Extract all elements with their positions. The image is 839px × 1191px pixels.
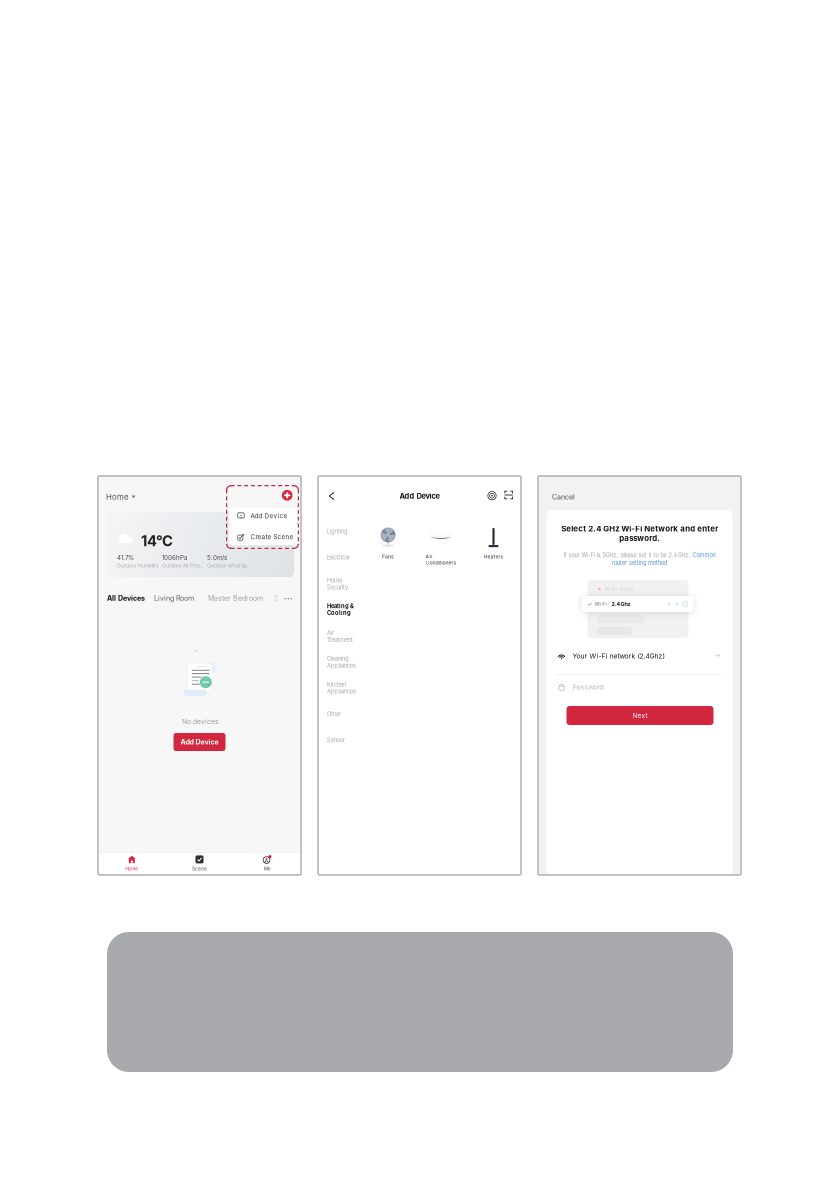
staticText: Air Conditioners [425,553,456,566]
staticText: S [274,594,279,602]
staticText: Cleaning Appliances [327,655,356,669]
button[interactable]: Me [233,852,301,875]
staticText: 14°C [141,532,173,550]
staticText: Outdoor Air Pres.. [162,563,203,569]
staticText: Kitchen Appliances [327,681,356,695]
button[interactable]: Scan QR code [503,489,515,501]
staticText: Wi-Fi - 5Ghz [604,586,633,592]
staticText: Heaters [483,553,503,560]
staticText: Next [632,711,647,719]
staticText: Master Bedroom [208,594,263,602]
staticText: Electrical [327,554,349,561]
staticText: Other [327,711,341,717]
button[interactable]: Scene [166,852,233,875]
staticText: Add Device [180,738,218,746]
staticText: Scene [192,866,207,871]
button[interactable]: Add Device [229,505,300,526]
button[interactable]: Home [98,852,166,875]
staticText: Add Device [250,512,287,520]
button[interactable]: Master Bedroom [208,594,263,602]
button[interactable]: Fans [365,527,411,567]
staticText: 2.4Ghz [611,601,630,607]
staticText: 5.0m/s [207,554,227,561]
button[interactable]: Air Conditioners [418,527,464,567]
button[interactable]: Cancel [552,490,592,504]
button[interactable]: Other [327,711,363,727]
button[interactable]: S [274,594,279,602]
staticText: ✕ [597,586,601,592]
staticText: Create Scene [250,533,293,541]
button[interactable]: Back [325,489,339,503]
button[interactable]: Heaters [470,527,516,567]
staticText: Your Wi-Fi network (2.4Ghz) [572,652,664,660]
button[interactable]: Voice control [486,490,498,502]
button[interactable]: Kitchen Appliances [327,681,363,697]
button[interactable]: Heating & Cooling [327,603,363,619]
button[interactable]: More rooms [284,595,293,601]
staticText: Lighting [327,528,348,535]
staticText: Cancel [552,493,575,501]
button[interactable]: Change network [712,651,722,661]
staticText: 41.7% [117,554,134,561]
staticText: Common [690,552,715,559]
staticText: Password [572,683,603,691]
button[interactable]: Sensor [327,737,363,753]
staticText: Outdoor Wind Sp.. [207,563,249,569]
staticText: Heating & Cooling [327,603,354,616]
staticText: Living Room [154,594,194,602]
staticText: Home [125,866,138,871]
button[interactable]: Home [106,491,146,503]
staticText: No devices [182,717,219,726]
staticText: Wi-Fi - [594,601,609,607]
staticText: Outdoor Humidity [117,563,159,569]
button[interactable]: Air Treatment [327,629,363,645]
staticText: Sensor [327,737,345,744]
button[interactable]: Add Device [173,733,225,751]
staticText: 1006hPa [162,554,187,561]
staticText: ✓ [587,601,591,607]
button[interactable]: Electrical [327,554,363,570]
staticText: Add Device [399,491,439,500]
button[interactable]: Add device or scene [282,490,292,501]
staticText: ••• [284,595,293,601]
staticText: All Devices [107,594,145,602]
staticText: Fans [382,553,394,560]
staticText: Home [106,492,129,502]
button[interactable]: Create Scene [229,526,300,547]
staticText: Air Treatment [327,629,353,643]
button[interactable]: Lighting [327,528,363,544]
button[interactable]: Living Room [154,594,194,602]
button[interactable]: Next [566,706,713,725]
button[interactable]: Cleaning Appliances [327,655,363,671]
staticText: If your Wi-Fi is 5GHz, please set it to … [563,552,690,559]
staticText: Select 2.4 GHz Wi-Fi Network and enter p… [561,524,718,543]
staticText: Me [264,866,271,871]
button[interactable]: Home Security [327,577,363,593]
staticText: router setting method [612,560,667,566]
button[interactable]: All Devices [107,594,145,602]
staticText: Home Security [327,577,348,591]
